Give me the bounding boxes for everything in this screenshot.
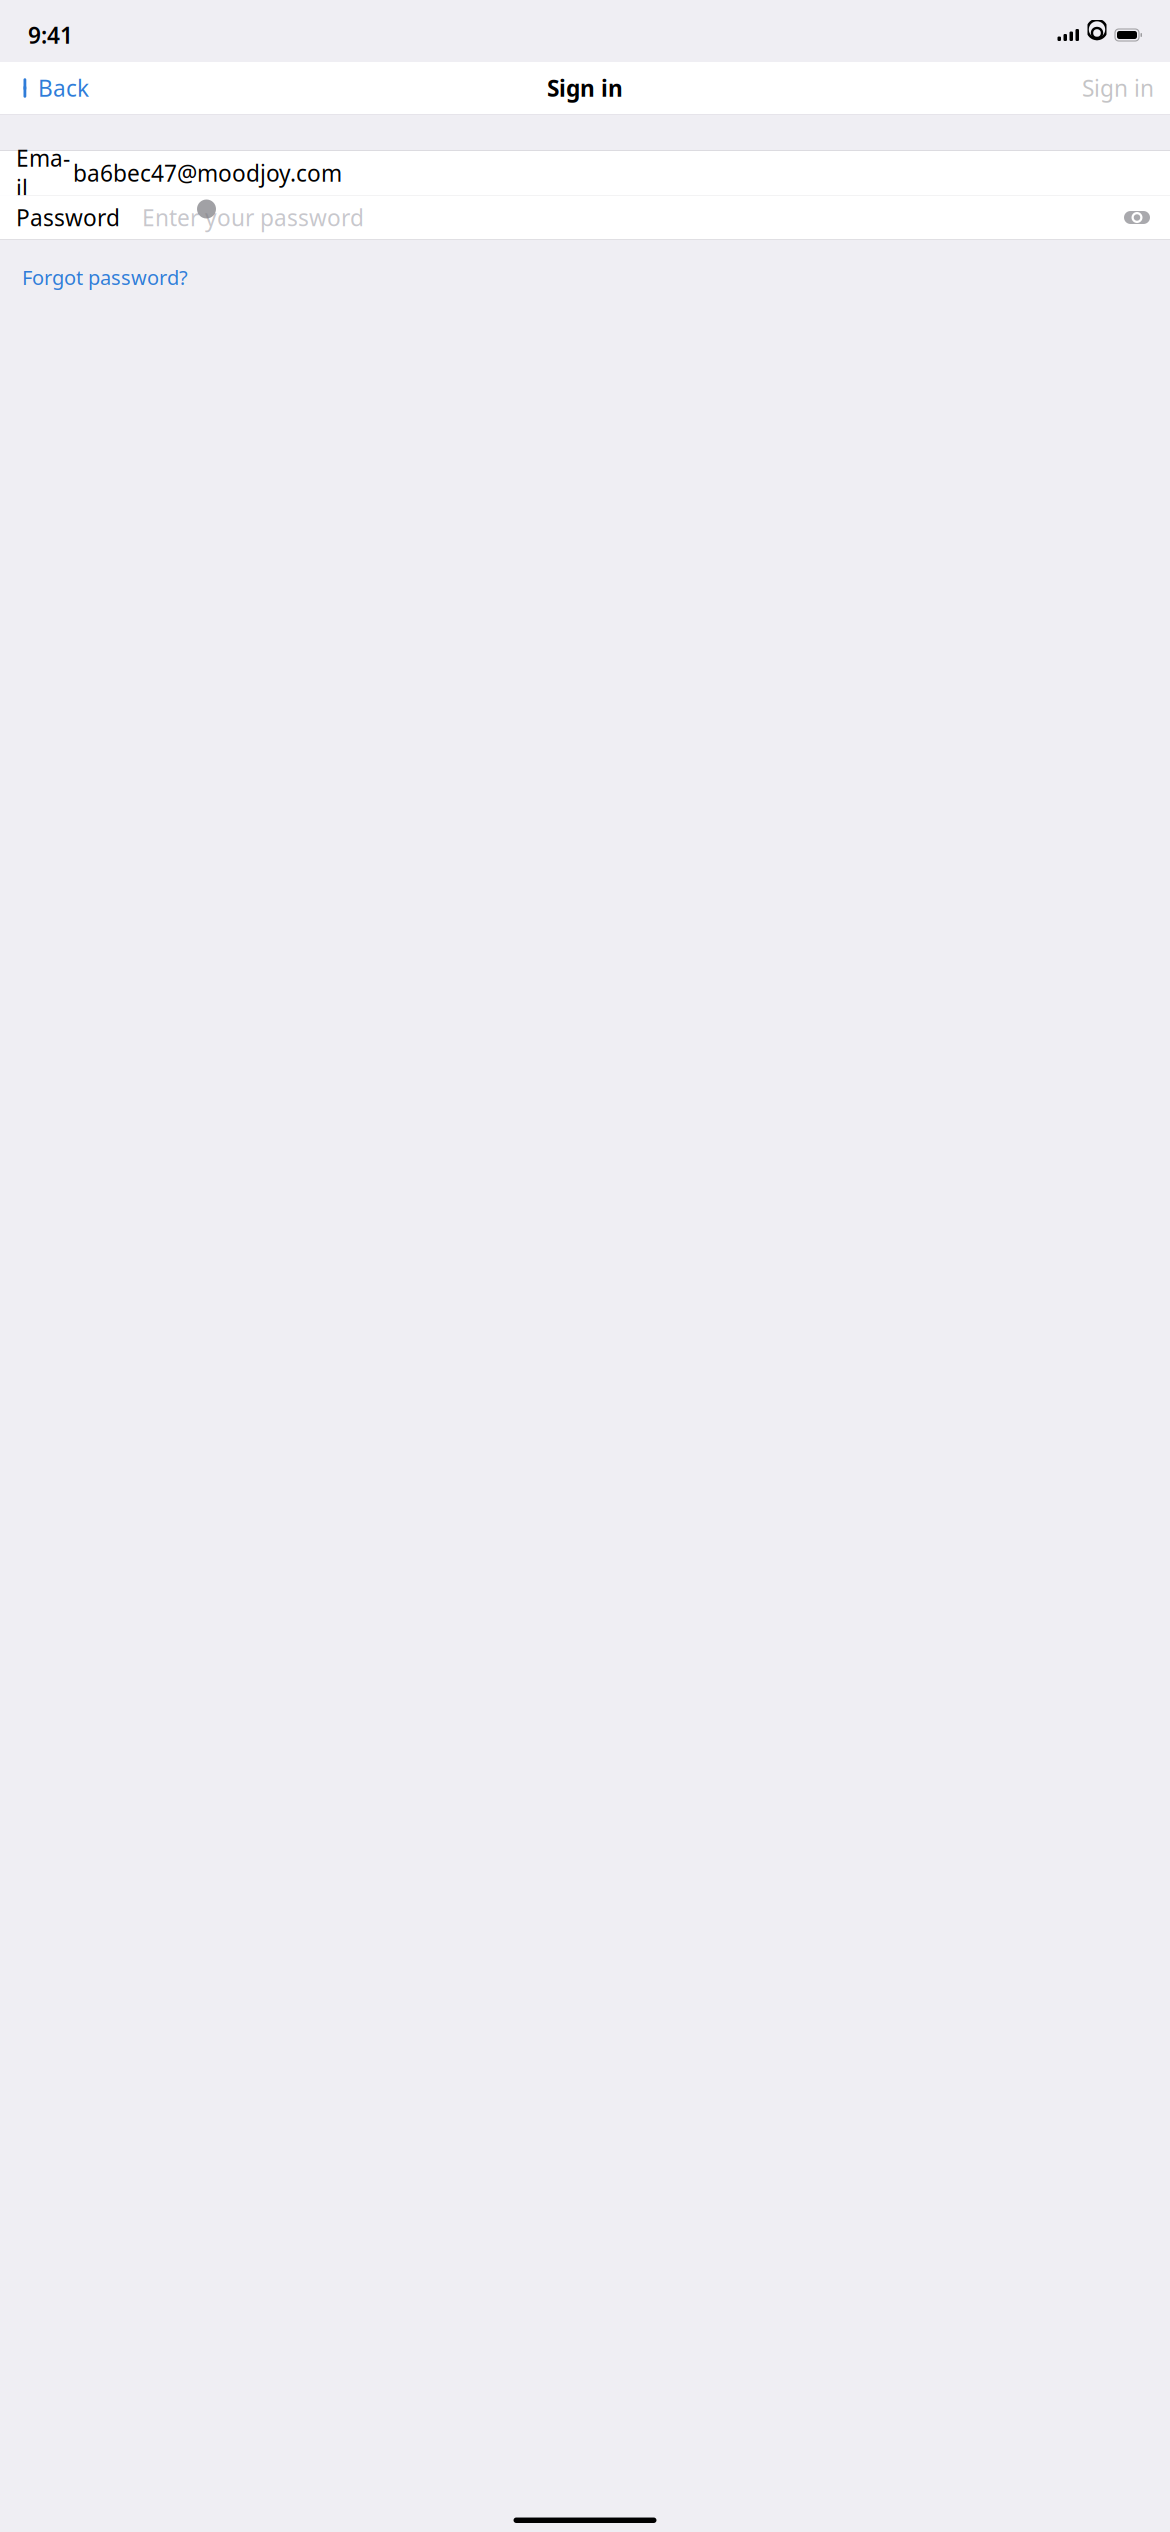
staticText: Enter your password — [142, 202, 364, 232]
button[interactable]: Show password — [1120, 200, 1154, 234]
staticText: Sign in — [547, 73, 623, 103]
staticText: ba6bec47@moodjoy.com — [73, 158, 342, 188]
staticText: Email — [16, 143, 70, 203]
button[interactable]: Sign in — [1078, 67, 1158, 109]
staticText: Forgot password? — [22, 264, 188, 291]
staticText: Back — [38, 73, 89, 103]
staticText: 9:41 — [28, 20, 73, 50]
staticText: Sign in — [1082, 73, 1154, 103]
button[interactable]: Back — [12, 67, 99, 109]
button[interactable]: Forgot password? — [22, 258, 188, 297]
button[interactable]: Email — [0, 151, 1170, 195]
button[interactable]: Password — [0, 195, 1170, 239]
staticText: Password — [16, 202, 120, 232]
